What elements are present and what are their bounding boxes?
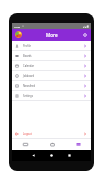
button[interactable]: Calendar	[12, 61, 91, 70]
button[interactable]: Jobboard	[12, 71, 91, 80]
staticText: More	[46, 32, 58, 38]
staticText: Newsfeed	[23, 84, 36, 88]
staticText: Logout	[23, 132, 32, 136]
button[interactable]: Settings	[12, 91, 91, 100]
button[interactable]: More	[65, 139, 91, 150]
staticText: Boards	[23, 54, 32, 58]
button[interactable]: Settings	[82, 32, 88, 38]
button[interactable]: Home	[12, 139, 39, 150]
button[interactable]: Logout	[12, 129, 91, 138]
staticText: 10:30	[14, 25, 21, 28]
other: Back	[32, 154, 35, 157]
button[interactable]: Profile avatar	[15, 31, 22, 38]
staticText: Jobboard	[23, 74, 35, 78]
button[interactable]: Jobs	[39, 139, 65, 150]
other: Home	[50, 154, 53, 157]
other: Recents	[68, 154, 71, 157]
staticText: Profile	[23, 44, 31, 48]
button[interactable]: Newsfeed	[12, 81, 91, 90]
staticText: Settings	[23, 94, 33, 98]
button[interactable]: Boards	[12, 51, 91, 60]
button[interactable]: Profile	[12, 41, 91, 50]
staticText: Calendar	[23, 64, 34, 68]
